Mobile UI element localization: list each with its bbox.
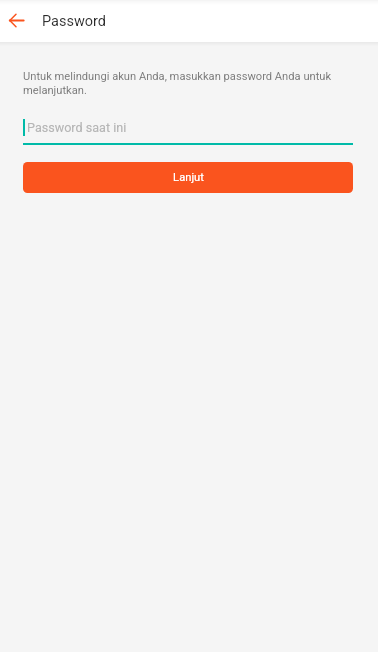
staticText: Password saat ini bbox=[27, 120, 127, 135]
button[interactable]: Password saat ini bbox=[23, 112, 353, 145]
staticText: Password bbox=[42, 13, 107, 30]
staticText: Lanjut bbox=[173, 171, 204, 184]
button[interactable]: Back bbox=[0, 0, 33, 42]
button[interactable]: Lanjut bbox=[23, 162, 353, 193]
staticText: Untuk melindungi akun Anda, masukkan pas… bbox=[23, 70, 353, 96]
